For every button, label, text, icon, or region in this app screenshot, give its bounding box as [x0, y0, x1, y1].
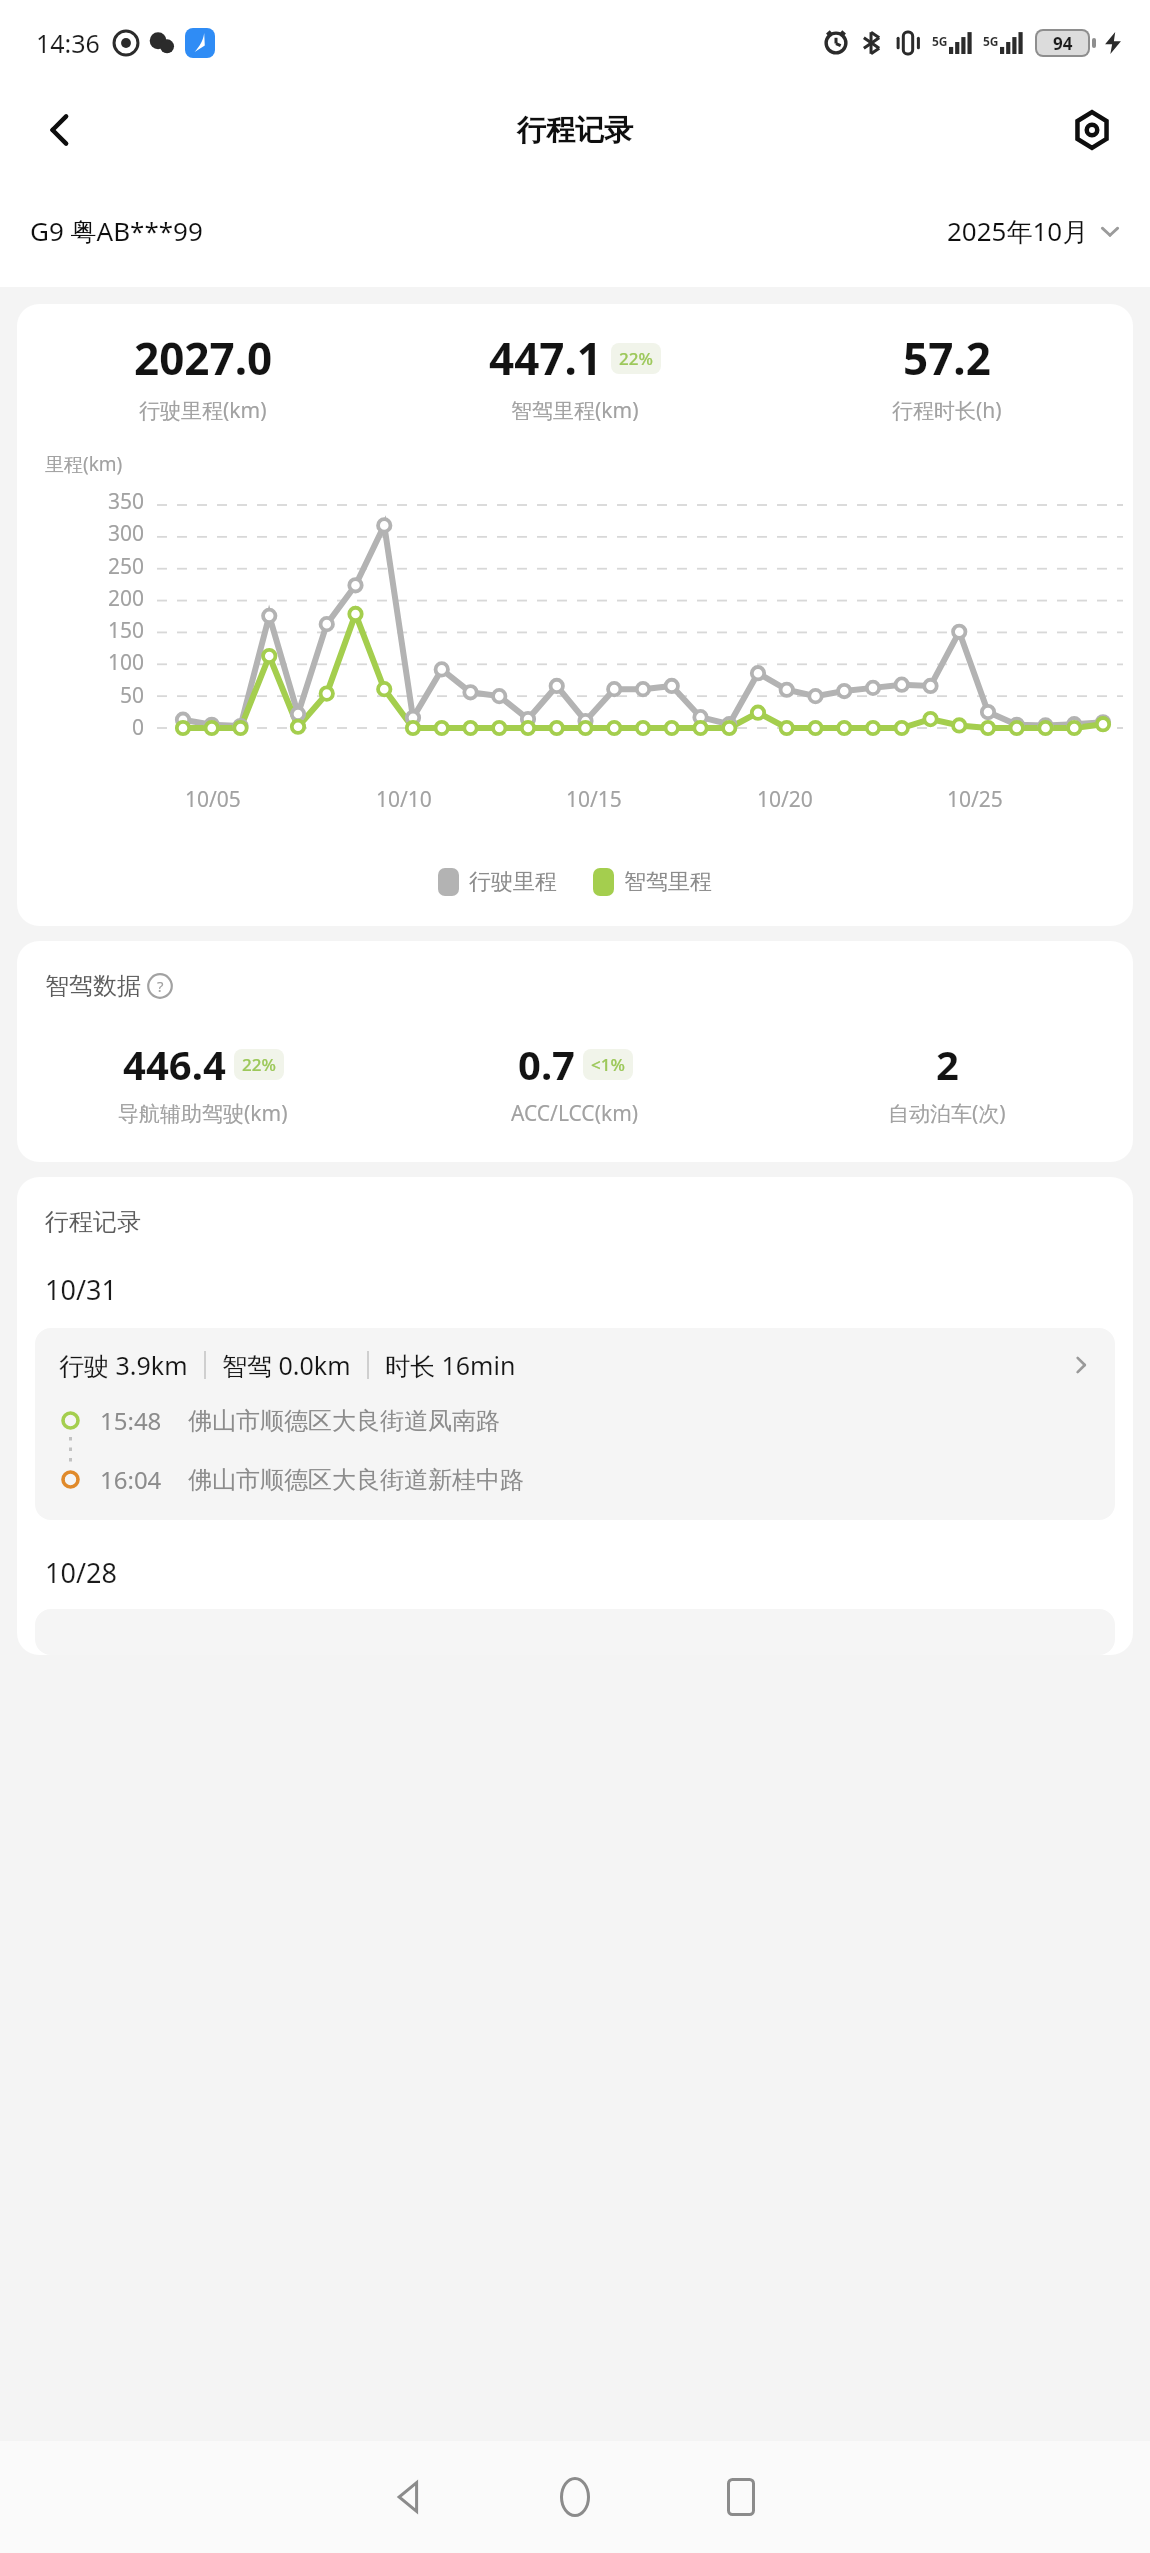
staticText: 2025年10月: [947, 213, 1089, 249]
staticText: 智驾里程(km): [511, 396, 639, 425]
staticText: 导航辅助驾驶(km): [118, 1099, 288, 1128]
staticText: 16:04: [100, 1463, 162, 1496]
staticText: 300: [108, 519, 145, 548]
staticText: 0.7: [518, 1037, 575, 1091]
staticText: 150: [108, 616, 145, 645]
staticText: 50: [120, 681, 145, 710]
staticText: 10/28: [45, 1554, 117, 1591]
button[interactable]: 2025年10月: [947, 203, 1122, 259]
staticText: <1%: [591, 1053, 625, 1076]
staticText: 22%: [619, 347, 653, 370]
staticText: 行程记录: [517, 112, 633, 149]
staticText: 2: [936, 1037, 959, 1091]
staticText: ?: [157, 976, 164, 996]
button[interactable]: Back: [359, 2447, 459, 2547]
staticText: 佛山市顺德区大良街道新桂中路: [188, 1465, 524, 1495]
staticText: 15:48: [100, 1404, 162, 1437]
button[interactable]: Back: [24, 94, 96, 166]
staticText: 5G: [983, 33, 999, 49]
staticText: 10/05: [185, 785, 241, 814]
staticText: 57.2: [903, 328, 991, 388]
staticText: 2027.0: [134, 328, 273, 388]
staticText: 佛山市顺德区大良街道凤南路: [188, 1406, 500, 1436]
staticText: 10/15: [566, 785, 622, 814]
button[interactable]: Recents: [691, 2447, 791, 2547]
staticText: 94: [1053, 32, 1073, 55]
staticText: 250: [108, 552, 145, 581]
staticText: 5G: [932, 33, 948, 49]
staticText: 14:36: [36, 26, 100, 60]
staticText: 智驾 0.0km: [222, 1348, 351, 1382]
button[interactable]: Info: [147, 973, 173, 999]
staticText: 350: [108, 487, 145, 516]
button[interactable]: Home: [525, 2447, 625, 2547]
staticText: 自动泊车(次): [888, 1099, 1006, 1128]
staticText: G9 粤AB***99: [30, 213, 203, 249]
staticText: 100: [108, 648, 145, 677]
staticText: 行程记录: [45, 1207, 141, 1237]
staticText: 智驾里程: [624, 868, 712, 896]
button[interactable]: 行驶 3.9km: [35, 1328, 1115, 1520]
staticText: 10/10: [376, 785, 432, 814]
staticText: 里程(km): [45, 451, 123, 477]
staticText: 行驶里程(km): [139, 396, 267, 425]
staticText: 200: [108, 584, 145, 613]
staticText: 22%: [242, 1053, 276, 1076]
staticText: ACC/LCC(km): [511, 1099, 639, 1128]
staticText: 智驾数据: [45, 971, 141, 1001]
button[interactable]: 智驾里程: [589, 864, 716, 900]
staticText: 0: [132, 713, 145, 742]
staticText: 行程时长(h): [892, 396, 1002, 425]
staticText: 10/25: [947, 785, 1003, 814]
staticText: 10/31: [45, 1271, 117, 1308]
button[interactable]: 行驶里程: [434, 864, 561, 900]
staticText: 446.4: [123, 1037, 226, 1091]
staticText: 10/20: [757, 785, 813, 814]
staticText: 行驶里程: [469, 868, 557, 896]
staticText: 行驶 3.9km: [59, 1348, 188, 1382]
staticText: 时长 16min: [385, 1348, 516, 1382]
button[interactable]: Settings: [1056, 94, 1128, 166]
staticText: 447.1: [489, 328, 603, 388]
